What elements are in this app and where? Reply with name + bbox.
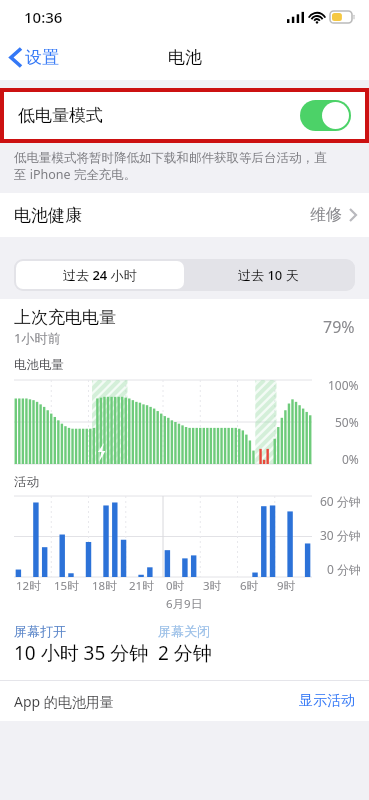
staticText: 低电量模式 <box>18 105 103 126</box>
staticText: 6时 <box>240 578 259 594</box>
staticText: 6月9日 <box>166 596 203 612</box>
staticText: 60 分钟 <box>320 493 361 509</box>
staticText: 21时 <box>129 578 154 594</box>
button[interactable]: 设置 <box>0 43 69 72</box>
staticText: 100% <box>328 377 359 393</box>
staticText: 活动 <box>14 474 39 490</box>
staticText: 过去 10 天 <box>238 266 299 284</box>
staticText: 0% <box>342 451 359 467</box>
staticText: 30 分钟 <box>320 527 361 543</box>
staticText: 10 小时 35 分钟 <box>14 640 149 666</box>
staticText: 低电量模式将暂时降低如下载和邮件获取等后台活动，直 至 iPhone 完全充电。 <box>14 150 327 183</box>
button[interactable]: 过去 10 天 <box>184 261 353 289</box>
staticText: 15时 <box>54 578 79 594</box>
staticText: 0时 <box>166 578 185 594</box>
staticText: 电池 <box>168 47 202 68</box>
staticText: 79% <box>323 316 355 338</box>
staticText: 1小时前 <box>14 329 61 347</box>
button[interactable]: 低电量模式 <box>4 92 365 139</box>
staticText: 设置 <box>25 47 59 68</box>
staticText: App 的电池用量 <box>14 692 114 711</box>
staticText: 2 分钟 <box>158 640 212 666</box>
button[interactable]: 显示活动 <box>299 692 355 710</box>
staticText: 3时 <box>203 578 222 594</box>
staticText: 过去 24 小时 <box>63 266 137 284</box>
button[interactable]: 电池健康 <box>0 193 369 237</box>
staticText: 18时 <box>92 578 117 594</box>
staticText: 显示活动 <box>299 692 355 710</box>
staticText: 12时 <box>16 578 41 594</box>
staticText: 屏幕关闭 <box>158 623 210 639</box>
staticText: 电池电量 <box>14 357 64 373</box>
staticText: 50% <box>335 414 359 430</box>
staticText: 电池健康 <box>14 205 82 226</box>
staticText: 10:36 <box>24 7 63 27</box>
staticText: 屏幕打开 <box>14 623 66 639</box>
button[interactable]: 过去 24 小时 <box>16 261 184 289</box>
staticText: 维修 <box>310 205 342 225</box>
staticText: 0 分钟 <box>327 561 361 577</box>
button[interactable]: Low Power Mode toggle <box>300 100 351 131</box>
staticText: 9时 <box>277 578 296 594</box>
staticText: 上次充电电量 <box>14 307 116 328</box>
